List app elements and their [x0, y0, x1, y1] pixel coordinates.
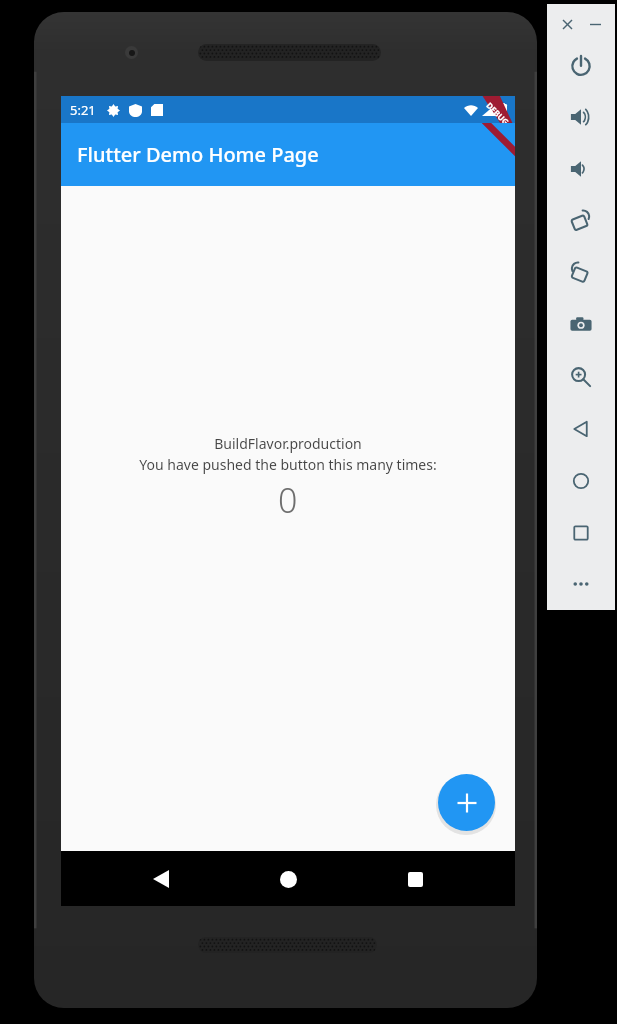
button[interactable]: Back [564, 412, 598, 446]
button[interactable]: Overview [564, 516, 598, 550]
button[interactable]: Rotate right [564, 256, 598, 290]
button[interactable]: Minimize [586, 15, 604, 33]
button[interactable]: Home [564, 464, 598, 498]
staticText: BuildFlavor.production [214, 434, 362, 453]
button[interactable]: Volume down [564, 152, 598, 186]
button[interactable]: Volume up [564, 100, 598, 134]
button[interactable]: Back [134, 852, 188, 906]
button[interactable]: Power [564, 48, 598, 82]
button[interactable]: Recent apps [388, 852, 442, 906]
staticText: Flutter Demo Home Page [77, 141, 319, 168]
button[interactable]: Screenshot [564, 308, 598, 342]
button[interactable]: Increment [438, 774, 495, 831]
staticText: 5:21 [70, 101, 96, 119]
staticText: You have pushed the button this many tim… [139, 455, 437, 474]
staticText: DEBUG [484, 100, 512, 127]
button[interactable]: Home [261, 852, 315, 906]
button[interactable]: Zoom [564, 360, 598, 394]
button[interactable]: Close [558, 15, 576, 33]
button[interactable]: More [564, 567, 598, 601]
button[interactable]: Rotate left [564, 204, 598, 238]
staticText: 0 [278, 477, 298, 523]
